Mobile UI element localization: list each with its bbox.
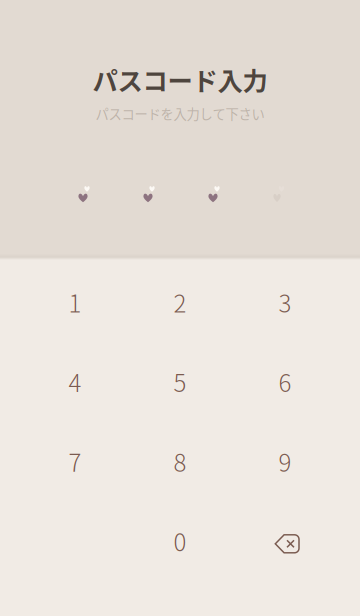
staticText: 0 <box>173 523 186 558</box>
staticText: 1 <box>68 285 81 319</box>
button[interactable]: 7 <box>22 426 127 496</box>
staticText: パスコード入力 <box>92 61 267 98</box>
staticText: 5 <box>173 364 186 399</box>
staticText: 7 <box>68 444 81 479</box>
staticText: 2 <box>173 285 186 319</box>
button[interactable]: Delete <box>232 506 337 576</box>
staticText: 9 <box>278 444 291 479</box>
button[interactable]: 4 <box>22 347 127 417</box>
button[interactable]: 3 <box>232 267 337 337</box>
staticText: 4 <box>68 364 81 399</box>
button[interactable]: 0 <box>127 506 232 576</box>
staticText: 6 <box>278 364 291 399</box>
button[interactable]: 8 <box>127 426 232 496</box>
staticText: 8 <box>173 444 186 479</box>
staticText: 3 <box>278 285 291 319</box>
button[interactable]: 5 <box>127 347 232 417</box>
button[interactable]: 6 <box>232 347 337 417</box>
button[interactable]: 2 <box>127 267 232 337</box>
staticText: パスコードを入力して下さい <box>95 104 264 123</box>
button[interactable]: 9 <box>232 426 337 496</box>
button[interactable]: 1 <box>22 267 127 337</box>
